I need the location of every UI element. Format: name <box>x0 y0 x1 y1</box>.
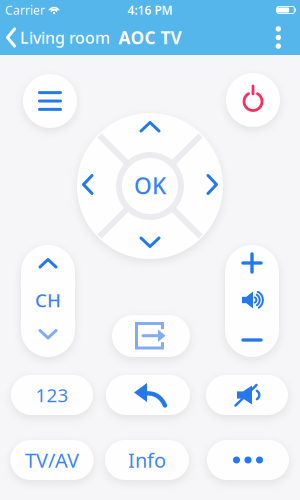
button[interactable]: Volume down <box>233 328 271 352</box>
staticText: AOC TV <box>118 26 181 49</box>
button[interactable]: OK <box>122 157 178 213</box>
button[interactable]: TV/AV <box>10 440 93 480</box>
staticText: TV/AV <box>25 447 79 473</box>
staticText: Info <box>128 447 166 473</box>
button[interactable]: Up <box>132 121 168 133</box>
staticText: OK <box>134 170 166 200</box>
button[interactable]: Right <box>205 166 217 202</box>
button[interactable]: Mute <box>206 375 288 415</box>
button[interactable]: Menu <box>23 74 77 128</box>
staticText: Carrier <box>5 2 45 18</box>
button[interactable]: More options <box>276 23 300 52</box>
button[interactable]: Channel down <box>29 323 67 353</box>
staticText: CH <box>35 288 61 312</box>
button[interactable]: Volume up <box>233 251 271 275</box>
button[interactable]: Power <box>226 73 280 127</box>
button[interactable]: Back <box>106 375 190 415</box>
button[interactable]: More <box>207 440 289 480</box>
staticText: 4:16 PM <box>127 2 172 18</box>
button[interactable]: Info <box>105 440 189 480</box>
button[interactable]: Channel up <box>29 252 67 282</box>
staticText: 123 <box>35 383 68 407</box>
button[interactable]: Left <box>82 166 94 202</box>
button[interactable]: Living room <box>0 27 110 48</box>
button[interactable]: Input source <box>112 315 190 357</box>
staticText: Living room <box>20 27 110 48</box>
button[interactable]: 123 <box>11 375 93 415</box>
button[interactable]: Down <box>132 237 168 249</box>
